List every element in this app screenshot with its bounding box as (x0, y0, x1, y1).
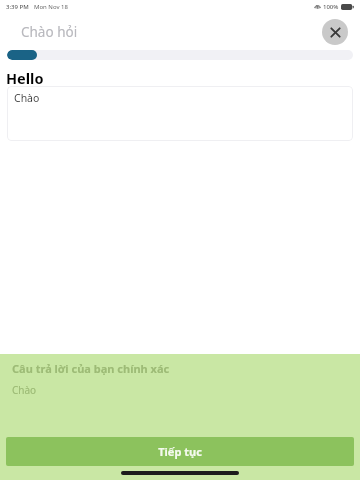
staticText: Hello (6, 68, 44, 88)
staticText: 3:39 PM (6, 3, 29, 11)
staticText: Câu trả lời của bạn chính xác (12, 361, 170, 376)
staticText: Chào (12, 383, 37, 397)
staticText: Chào (14, 91, 40, 105)
staticText: Chào hỏi (21, 23, 78, 41)
button[interactable]: Chào (7, 86, 353, 141)
staticText: Tiếp tục (158, 444, 202, 459)
button[interactable]: Close (322, 19, 348, 45)
staticText: 100% (323, 3, 339, 11)
button[interactable]: Tiếp tục (6, 437, 354, 466)
staticText: Mon Nov 18 (34, 3, 68, 11)
